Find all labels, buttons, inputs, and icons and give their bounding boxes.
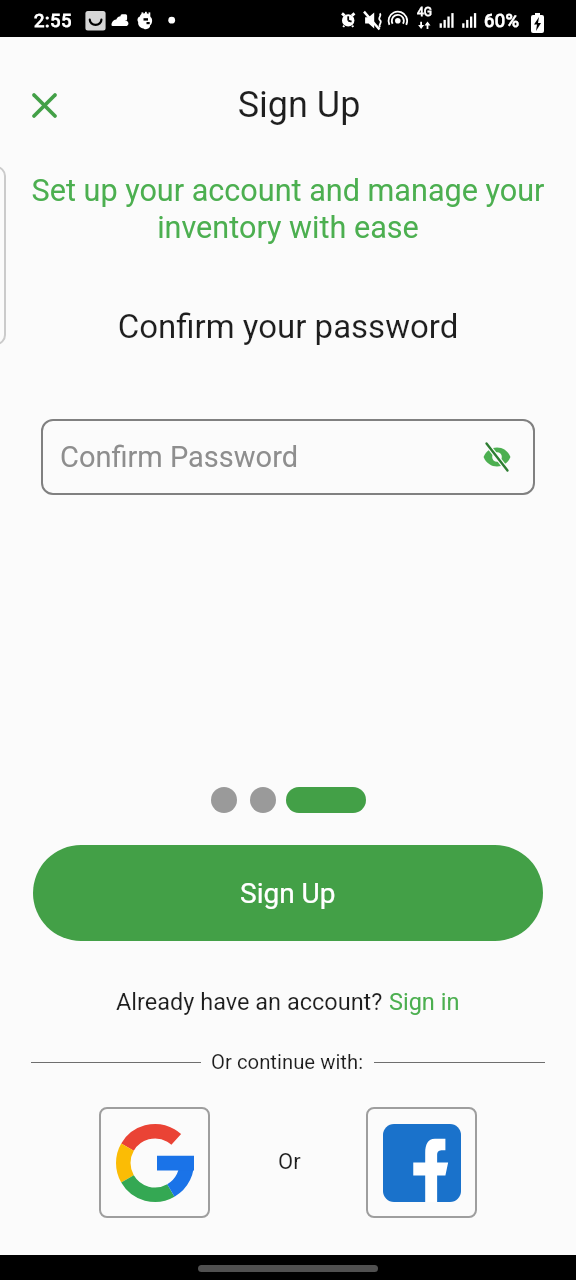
staticText: Sign Up (240, 877, 336, 910)
button[interactable]: Sign up with Facebook (366, 1107, 477, 1218)
staticText: Or (278, 1149, 301, 1175)
staticText: 2:55 (34, 10, 73, 32)
button[interactable]: Show password (483, 443, 511, 471)
button[interactable]: Confirm Password (41, 419, 535, 495)
staticText: Already have an account? (116, 988, 389, 1016)
staticText: Set up your account and manage your inve… (22, 173, 554, 245)
button[interactable]: Sign up with Google (99, 1107, 210, 1218)
staticText: Confirm Password (60, 440, 299, 474)
staticText: Or continue with: (201, 1050, 374, 1074)
staticText: Sign Up (11, 84, 576, 126)
button[interactable]: Close (20, 81, 68, 129)
staticText: Confirm your password (0, 307, 576, 346)
staticText: 4G (417, 5, 432, 19)
button[interactable]: Sign Up (33, 845, 543, 941)
staticText: 60% (484, 10, 520, 32)
button[interactable]: Sign in (389, 988, 460, 1016)
